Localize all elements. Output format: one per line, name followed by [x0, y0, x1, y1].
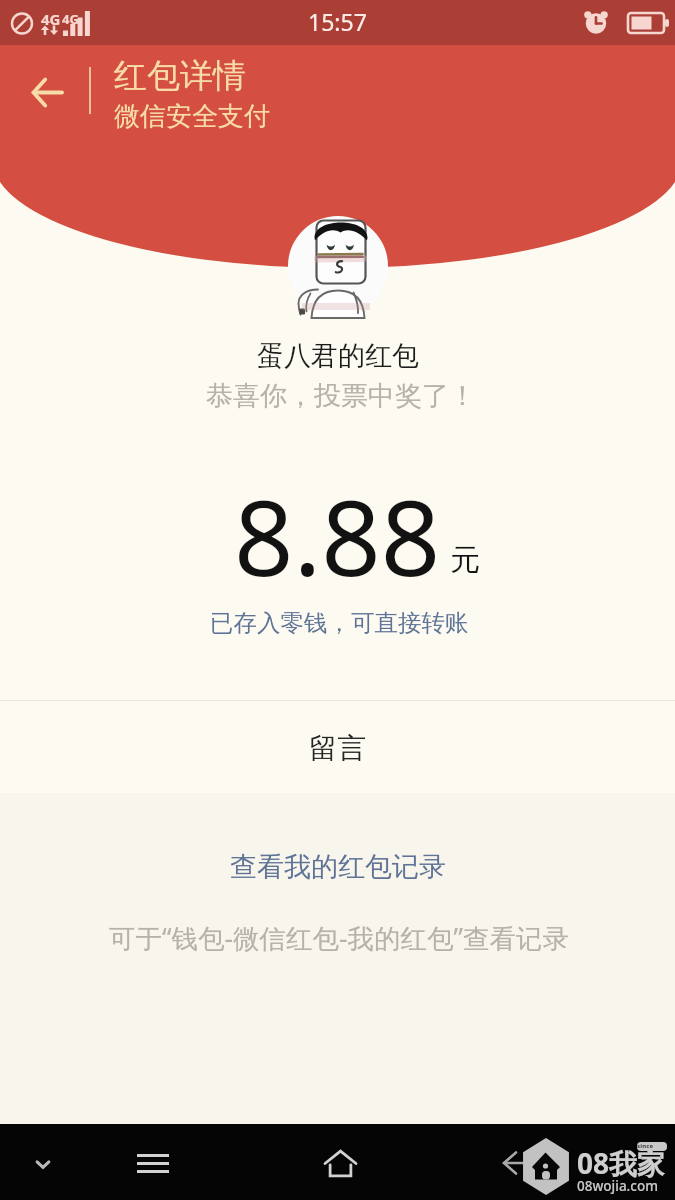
staticText: 恭喜你，投票中奖了！: [206, 379, 476, 413]
staticText: 已存入零钱，可直接转账: [210, 608, 469, 638]
staticText: 08wojia.com: [577, 1177, 658, 1195]
staticText: since 2008: [637, 1142, 667, 1151]
button[interactable]: 查看我的红包记录: [208, 842, 468, 892]
staticText: 4G: [41, 9, 61, 29]
staticText: 8.88: [234, 465, 441, 607]
staticText: 元: [450, 541, 480, 579]
button[interactable]: Back: [0, 45, 90, 155]
button[interactable]: Back: [478, 1124, 558, 1200]
staticText: 查看我的红包记录: [230, 850, 446, 884]
staticText: 留言: [309, 731, 366, 767]
staticText: 08我家: [577, 1144, 666, 1182]
button[interactable]: Menu: [112, 1124, 194, 1200]
staticText: 可于“钱包-微信红包-我的红包”查看记录: [109, 920, 570, 956]
staticText: 15:57: [308, 6, 367, 37]
staticText: 红包详情: [114, 55, 246, 97]
staticText: 蛋八君的红包: [257, 339, 419, 373]
staticText: 微信安全支付: [114, 100, 270, 133]
button[interactable]: Home: [300, 1124, 380, 1200]
button[interactable]: Hide keyboard: [0, 1124, 85, 1200]
staticText: 4G: [62, 10, 79, 28]
